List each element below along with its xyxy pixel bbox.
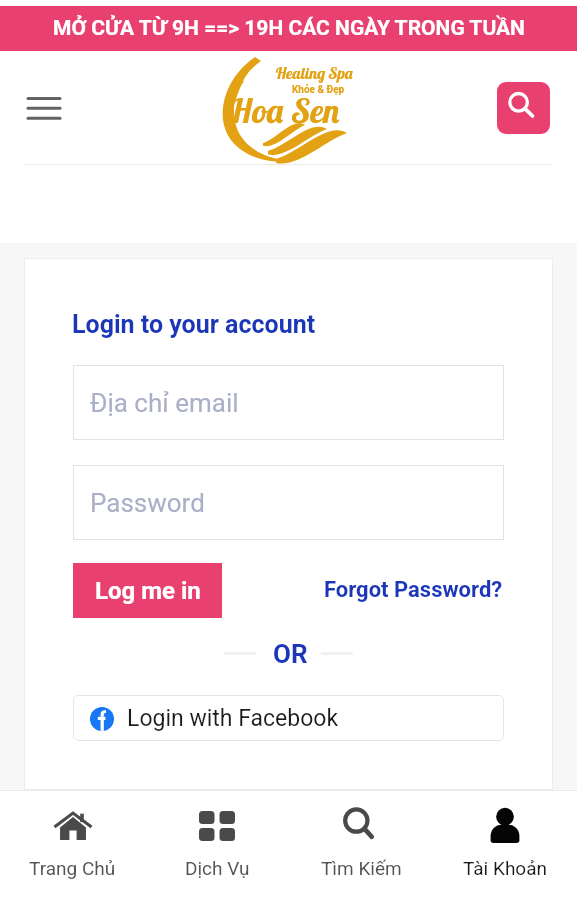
button[interactable]: Search xyxy=(497,82,550,134)
staticText: Trang Chủ xyxy=(29,857,116,879)
button[interactable]: Dịch Vụ xyxy=(145,790,289,900)
staticText: Forgot Password? xyxy=(324,577,503,603)
staticText: MỞ CỬA TỪ 9H ==> 19H CÁC NGÀY TRONG TUẦN xyxy=(53,16,525,41)
staticText: Hoa Sen xyxy=(228,89,341,132)
button[interactable]: Trang Chủ xyxy=(0,790,145,900)
staticText: Healing Spa xyxy=(275,63,354,83)
staticText: Password xyxy=(90,488,205,518)
staticText: Login with Facebook xyxy=(127,705,339,732)
staticText: Tài Khoản xyxy=(463,857,548,879)
button[interactable]: Login with Facebook xyxy=(73,695,504,741)
staticText: Địa chỉ email xyxy=(90,388,239,418)
button[interactable]: Forgot Password? xyxy=(324,577,503,603)
staticText: Tìm Kiếm xyxy=(321,857,402,879)
staticText: Dịch Vụ xyxy=(185,857,250,879)
button[interactable]: Tìm Kiếm xyxy=(289,790,433,900)
staticText: OR xyxy=(273,639,308,669)
staticText: Log me in xyxy=(95,577,201,605)
staticText: Khỏe & Đẹp xyxy=(292,84,345,96)
staticText: Login to your account xyxy=(72,310,316,339)
button[interactable]: Menu xyxy=(8,71,80,147)
button[interactable]: Log me in xyxy=(73,563,222,618)
button[interactable]: Tài Khoản xyxy=(433,790,577,900)
